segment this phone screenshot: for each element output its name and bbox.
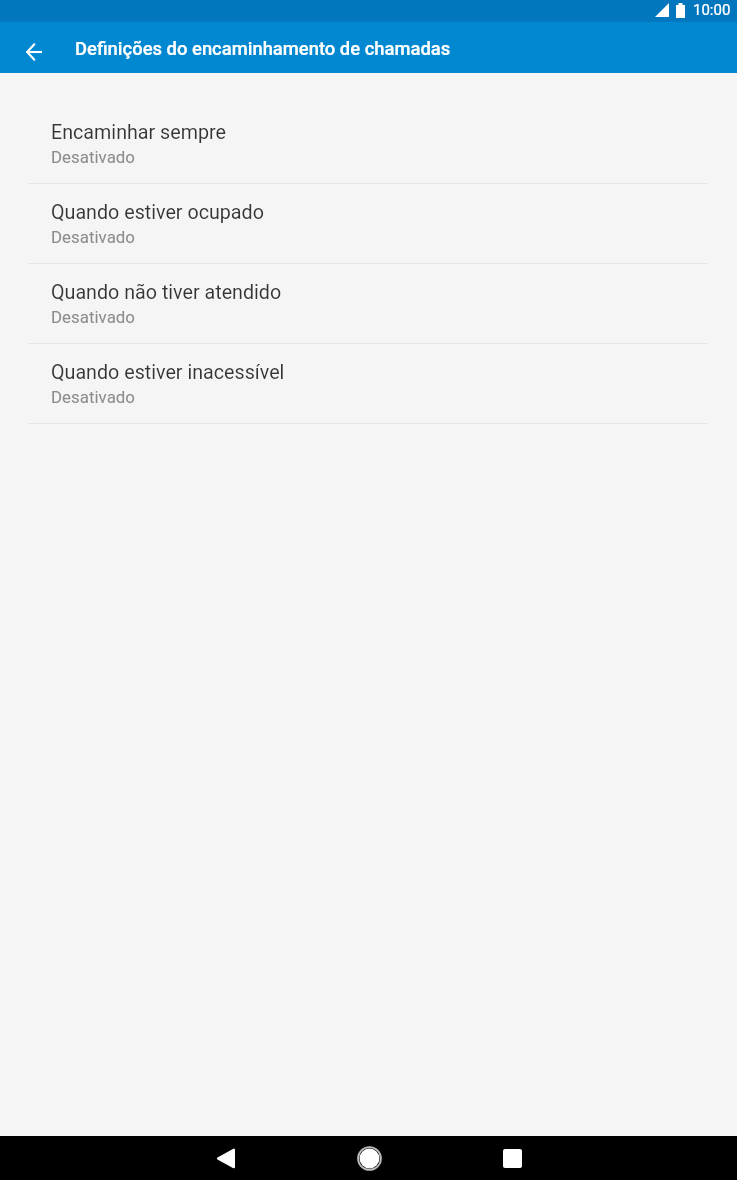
staticText: Desativado <box>51 307 135 327</box>
staticText: Desativado <box>51 387 135 407</box>
button[interactable]: Home <box>339 1136 399 1180</box>
staticText: Definições do encaminhamento de chamadas <box>75 38 451 60</box>
staticText: Quando estiver ocupado <box>51 201 264 224</box>
staticText: Encaminhar sempre <box>51 121 226 144</box>
staticText: Desativado <box>51 227 135 247</box>
button[interactable]: Quando estiver inacessível <box>0 344 737 424</box>
button[interactable]: Quando estiver ocupado <box>0 184 737 264</box>
button[interactable]: Quando não tiver atendido <box>0 264 737 344</box>
button[interactable]: Back <box>9 23 58 72</box>
staticText: 10:00 <box>693 1 731 19</box>
button[interactable]: Back <box>195 1136 255 1180</box>
staticText: Quando não tiver atendido <box>51 281 282 304</box>
staticText: Desativado <box>51 147 135 167</box>
button[interactable]: Encaminhar sempre <box>0 104 737 184</box>
staticText: Quando estiver inacessível <box>51 361 285 384</box>
button[interactable]: Recents <box>482 1136 542 1180</box>
